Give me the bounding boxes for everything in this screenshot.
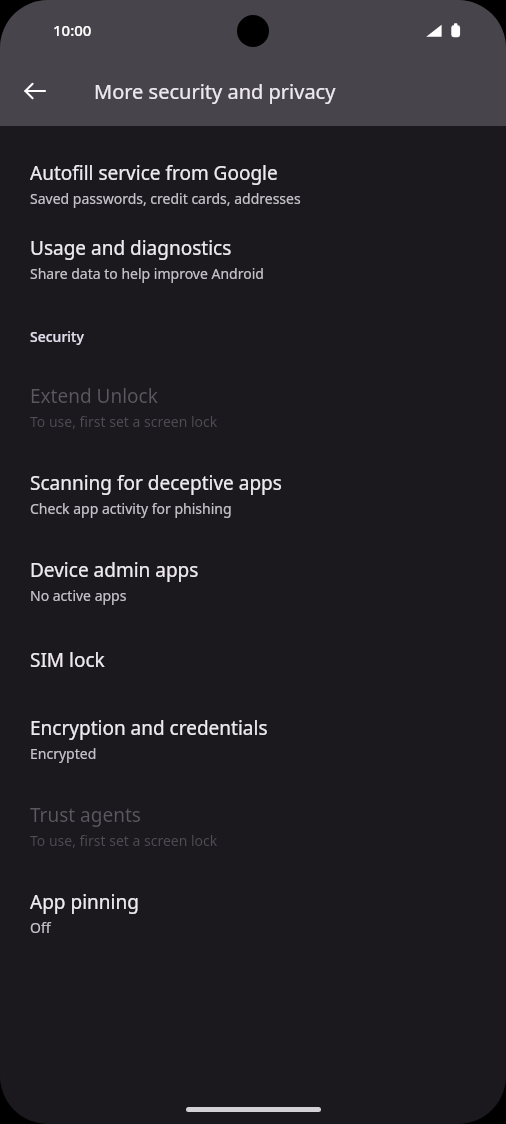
button[interactable]: Usage and diagnostics xyxy=(0,235,506,283)
staticText: Trust agents xyxy=(30,802,141,828)
staticText: Extend Unlock xyxy=(30,383,158,409)
button[interactable]: Back xyxy=(11,67,59,115)
staticText: More security and privacy xyxy=(94,78,336,105)
staticText: Security xyxy=(30,327,84,346)
staticText: Scanning for deceptive apps xyxy=(30,470,282,496)
staticText: Share data to help improve Android xyxy=(30,264,264,283)
staticText: Off xyxy=(30,918,51,937)
staticText: 10:00 xyxy=(53,20,92,40)
button[interactable]: Encryption and credentials xyxy=(0,715,506,763)
button[interactable]: SIM lock xyxy=(0,647,506,673)
button[interactable]: Autofill service from Google xyxy=(0,160,506,208)
staticText: No active apps xyxy=(30,586,127,605)
staticText: Encrypted xyxy=(30,744,97,763)
staticText: Check app activity for phishing xyxy=(30,499,232,518)
staticText: Saved passwords, credit cards, addresses xyxy=(30,189,301,208)
staticText: SIM lock xyxy=(30,647,105,673)
staticText: To use, first set a screen lock xyxy=(30,412,218,431)
button[interactable]: Scanning for deceptive apps xyxy=(0,470,506,518)
staticText: Encryption and credentials xyxy=(30,715,268,741)
button[interactable]: Extend Unlock xyxy=(0,383,506,431)
staticText: App pinning xyxy=(30,889,139,915)
staticText: Autofill service from Google xyxy=(30,160,278,186)
button[interactable]: Device admin apps xyxy=(0,557,506,605)
staticText: Device admin apps xyxy=(30,557,199,583)
staticText: To use, first set a screen lock xyxy=(30,831,218,850)
staticText: Usage and diagnostics xyxy=(30,235,232,261)
button[interactable]: Trust agents xyxy=(0,802,506,850)
button[interactable]: App pinning xyxy=(0,889,506,937)
